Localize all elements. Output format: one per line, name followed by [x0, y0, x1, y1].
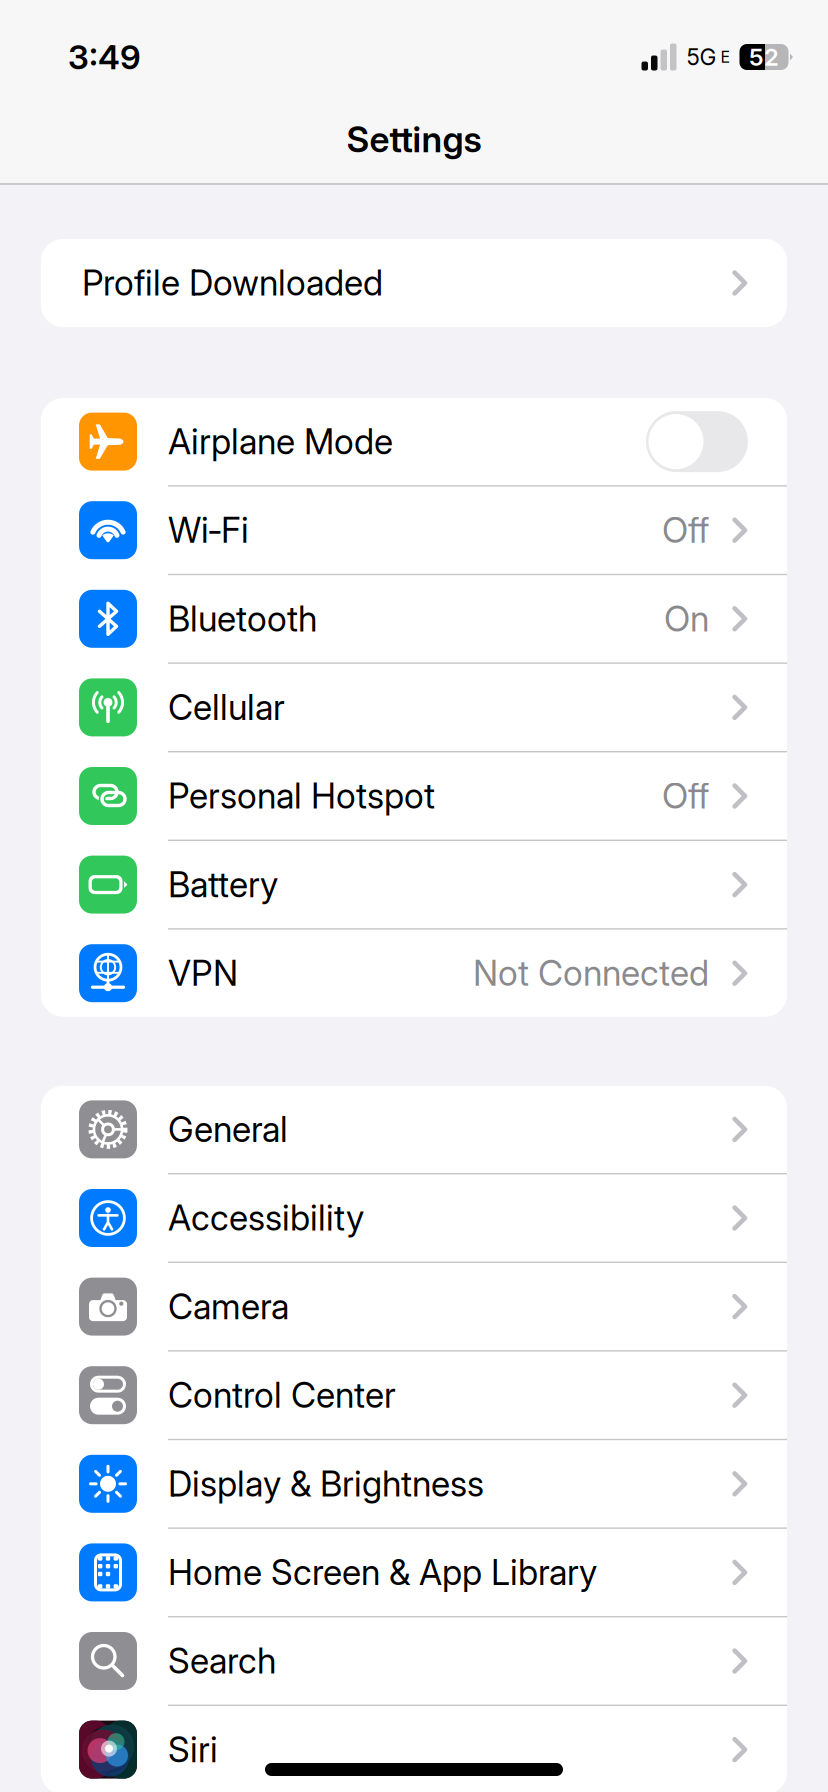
button[interactable]: Wi‑Fi	[41, 487, 787, 574]
button[interactable]: Home Screen & App Library	[41, 1529, 787, 1616]
staticText: Settings	[346, 118, 481, 161]
button[interactable]: Display & Brightness	[41, 1440, 787, 1527]
button[interactable]: Cellular	[41, 664, 787, 751]
button[interactable]: Siri	[41, 1706, 787, 1792]
staticText: Siri	[168, 1729, 218, 1770]
staticText: E	[720, 47, 730, 67]
staticText: Search	[168, 1640, 276, 1682]
staticText: Personal Hotspot	[168, 775, 435, 817]
staticText: Off	[662, 509, 709, 551]
staticText: General	[168, 1108, 288, 1150]
staticText: Off	[662, 775, 709, 817]
button[interactable]: VPN	[41, 930, 787, 1017]
button[interactable]: Bluetooth	[41, 575, 787, 662]
button[interactable]: Search	[41, 1617, 787, 1705]
staticText: On	[664, 598, 709, 640]
button[interactable]: Airplane Mode	[41, 398, 787, 485]
staticText: 5G	[686, 43, 716, 71]
button[interactable]: Personal Hotspot	[41, 752, 787, 840]
staticText: 5	[749, 42, 764, 71]
button[interactable]: Accessibility	[41, 1174, 787, 1262]
staticText: Home Screen & App Library	[168, 1551, 597, 1593]
staticText: 2	[764, 42, 779, 71]
staticText: 3:49	[68, 37, 141, 77]
staticText: Accessibility	[168, 1197, 364, 1239]
staticText: Control Center	[168, 1374, 396, 1416]
staticText: Battery	[168, 864, 278, 905]
staticText: Display & Brightness	[168, 1463, 484, 1505]
staticText: Profile Downloaded	[82, 262, 383, 304]
staticText: VPN	[168, 952, 238, 994]
button[interactable]: Camera	[41, 1263, 787, 1350]
staticText: Wi‑Fi	[168, 509, 249, 551]
staticText: Bluetooth	[168, 598, 317, 640]
button[interactable]: Control Center	[41, 1352, 787, 1439]
button[interactable]: Profile Downloaded	[41, 239, 787, 327]
staticText: Cellular	[168, 686, 285, 728]
staticText: Not Connected	[473, 952, 709, 994]
button[interactable]: General	[41, 1086, 787, 1173]
button[interactable]: Battery	[41, 841, 787, 928]
staticText: Airplane Mode	[168, 421, 393, 462]
staticText: Camera	[168, 1286, 289, 1327]
